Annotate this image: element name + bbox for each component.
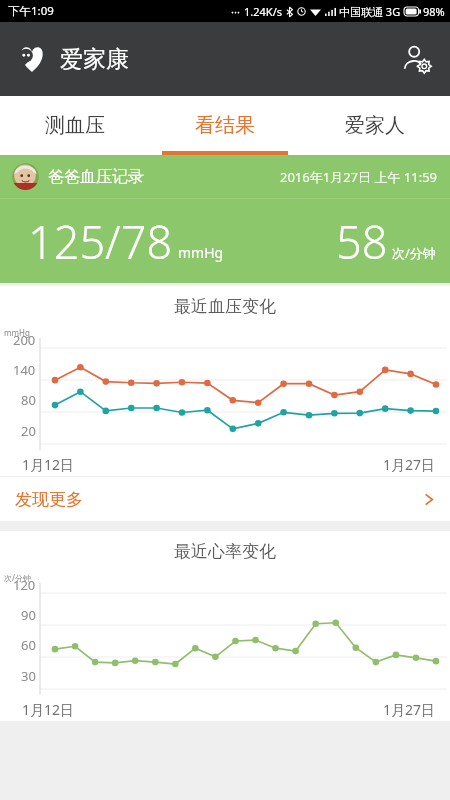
staticText: mmHg [178,243,224,262]
staticText: 20 [21,422,36,440]
staticText: 1月27日 [383,455,436,474]
button[interactable]: 爱家人 [300,96,450,155]
staticText: 看结果 [195,113,255,138]
staticText: 爱家人 [345,113,405,138]
staticText: 58 [336,211,388,272]
button[interactable]: 发现更多 [0,477,450,521]
button[interactable]: 测血压 [0,96,150,155]
staticText: 120 [13,576,36,594]
staticText: 中国联通 3G [339,4,401,19]
button[interactable]: 看结果 [150,96,300,155]
staticText: 发现更多 [15,489,83,510]
staticText: 爱家康 [60,45,129,74]
staticText: 1月12日 [22,700,75,719]
staticText: 次/分钟 [392,244,436,262]
staticText: ··· [231,4,240,19]
staticText: 200 [13,331,36,349]
staticText: 140 [13,361,36,379]
staticText: 80 [21,391,36,409]
staticText: 1月12日 [22,455,75,474]
staticText: 下午1:09 [8,3,54,19]
staticText: 98% [423,4,445,19]
button[interactable]: 账户设置 [394,36,440,82]
staticText: 90 [21,606,36,624]
staticText: 30 [21,667,36,685]
staticText: 最近血压变化 [174,296,276,317]
staticText: mmHg [4,327,30,338]
staticText: 1月27日 [383,700,436,719]
staticText: 最近心率变化 [174,541,276,562]
button[interactable]: 爸爸血压记录 [0,155,450,283]
staticText: 125/78 [28,211,173,272]
staticText: 次/分钟 [4,572,31,583]
staticText: 测血压 [45,113,105,138]
staticText: 爸爸血压记录 [48,167,144,187]
staticText: 60 [21,636,36,654]
staticText: 2016年1月27日 上午 11:59 [280,168,438,186]
staticText: 1.24K/s [244,4,282,19]
